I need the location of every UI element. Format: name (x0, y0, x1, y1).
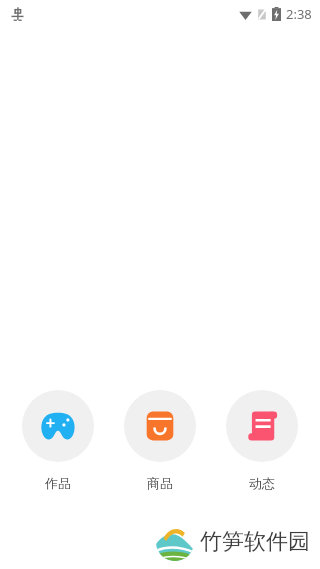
button[interactable]: 作品 (22, 390, 94, 491)
staticText: 竹笋软件园 (200, 528, 310, 556)
staticText: 2:38 (286, 5, 312, 23)
button[interactable]: 商品 (124, 390, 196, 491)
staticText: 动态 (249, 475, 275, 491)
staticText: 商品 (147, 475, 173, 491)
button[interactable]: 动态 (226, 390, 298, 491)
staticText: 作品 (45, 475, 71, 491)
